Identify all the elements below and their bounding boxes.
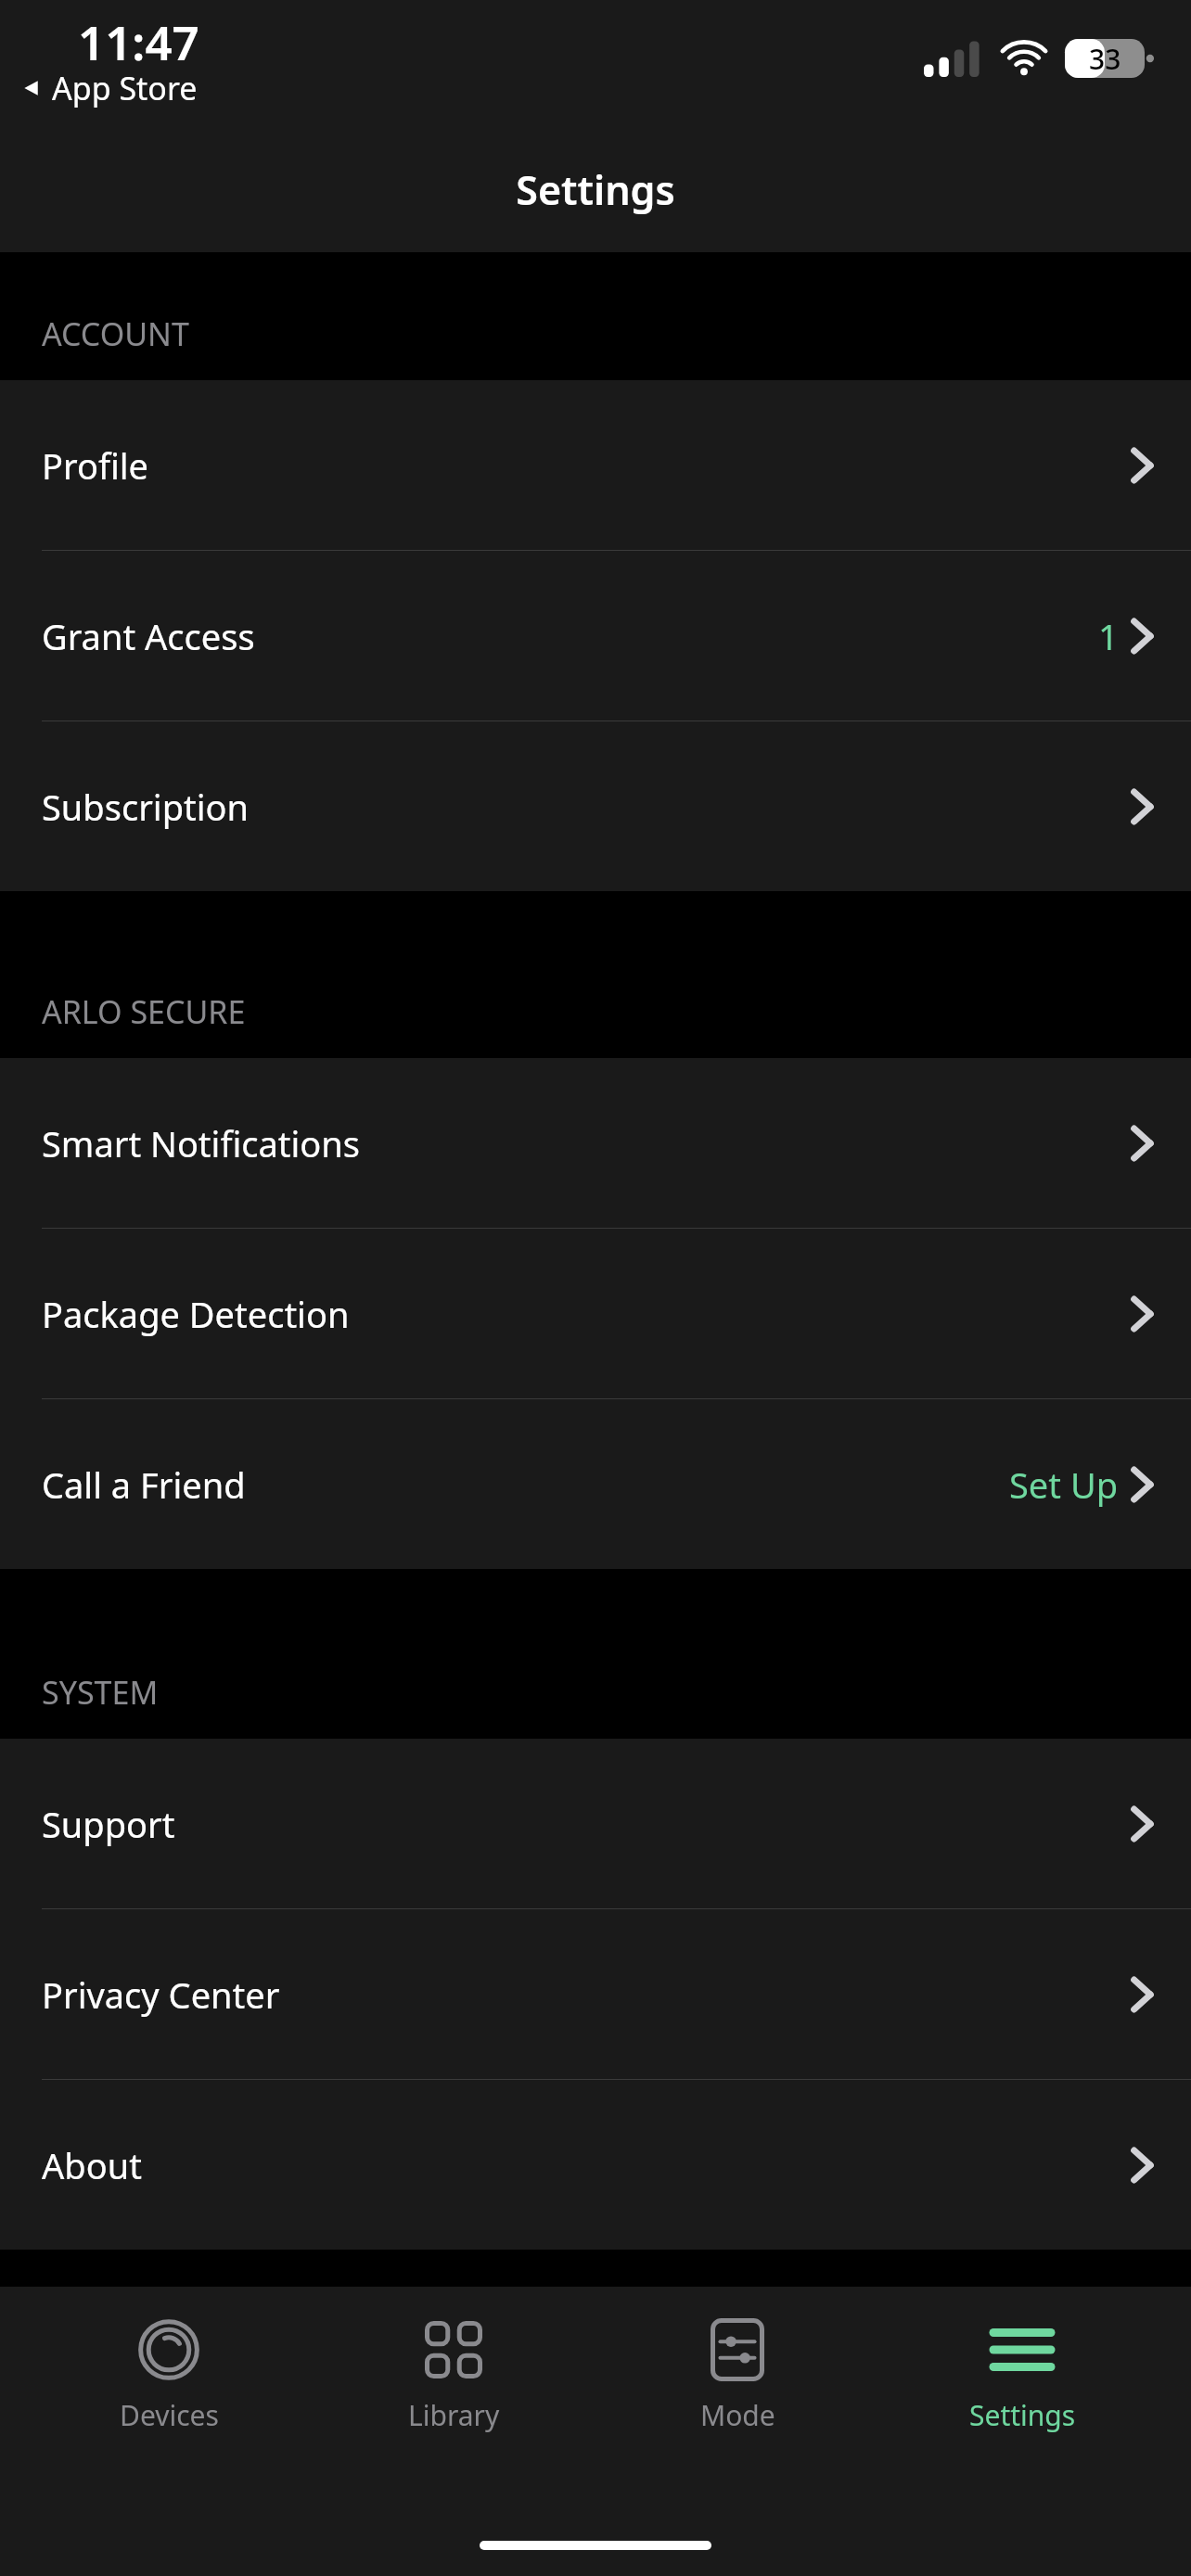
staticText: ARLO SECURE xyxy=(42,990,246,1033)
staticText: SYSTEM xyxy=(42,1671,159,1714)
staticText: Subscription xyxy=(42,783,250,831)
staticText: Grant Access xyxy=(42,612,255,660)
staticText: Settings xyxy=(516,162,675,217)
button[interactable]: Smart Notifications xyxy=(0,1058,1191,1228)
staticText: Profile xyxy=(42,441,149,490)
staticText: About xyxy=(42,2141,142,2189)
staticText: 33 xyxy=(1089,40,1121,78)
staticText: Devices xyxy=(120,2396,219,2434)
button[interactable]: Package Detection xyxy=(0,1229,1191,1398)
other: Settings xyxy=(993,2328,1051,2371)
button[interactable]: Settings xyxy=(906,2309,1138,2442)
staticText: Library xyxy=(408,2396,500,2434)
button[interactable]: Profile xyxy=(0,380,1191,550)
button[interactable]: About xyxy=(0,2080,1191,2250)
button[interactable]: Privacy Center xyxy=(0,1909,1191,2079)
staticText: Call a Friend xyxy=(42,1460,246,1509)
staticText: Support xyxy=(42,1800,175,1848)
staticText: Mode xyxy=(700,2396,775,2434)
button[interactable]: Library xyxy=(338,2309,570,2442)
button[interactable]: Subscription xyxy=(0,721,1191,891)
button[interactable]: Call a Friend xyxy=(0,1399,1191,1569)
staticText: App Store xyxy=(52,67,198,109)
button[interactable]: Mode xyxy=(621,2309,853,2442)
other: Library xyxy=(425,2321,482,2378)
staticText: Settings xyxy=(969,2396,1076,2434)
staticText: 1 xyxy=(1098,612,1119,660)
button[interactable]: Grant Access xyxy=(0,551,1191,721)
other: Devices xyxy=(138,2319,199,2380)
button[interactable]: Support xyxy=(0,1739,1191,1908)
staticText: Smart Notifications xyxy=(42,1119,361,1167)
other: Mode xyxy=(711,2318,764,2381)
button[interactable]: Devices xyxy=(53,2309,285,2442)
staticText: Set Up xyxy=(1009,1460,1119,1509)
staticText: ACCOUNT xyxy=(42,312,189,355)
staticText: Package Detection xyxy=(42,1290,350,1338)
staticText: Privacy Center xyxy=(42,1970,280,2019)
staticText: 11:47 xyxy=(78,9,199,73)
